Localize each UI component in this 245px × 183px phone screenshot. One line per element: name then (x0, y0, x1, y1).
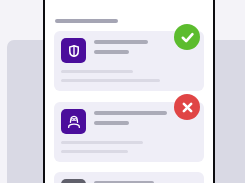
button[interactable]: Secure (174, 24, 200, 50)
button[interactable] (54, 172, 204, 183)
button[interactable]: At risk (174, 94, 200, 120)
button[interactable] (54, 31, 204, 91)
button[interactable] (54, 102, 204, 162)
